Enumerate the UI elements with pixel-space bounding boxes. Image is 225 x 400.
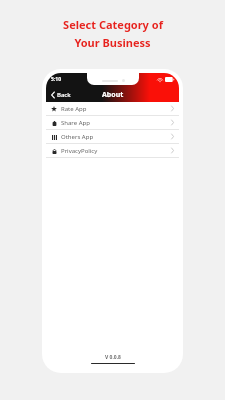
- staticText: 5:10: [51, 76, 61, 83]
- staticText: About: [102, 90, 124, 100]
- button[interactable]: Share App: [46, 116, 179, 130]
- staticText: Share App: [61, 119, 90, 127]
- button[interactable]: PrivacyPolicy: [46, 144, 179, 158]
- staticText: Others App: [61, 133, 94, 141]
- staticText: Rate App: [61, 105, 87, 113]
- staticText: Your Business: [74, 35, 151, 50]
- button[interactable]: Back: [49, 89, 73, 101]
- staticText: Select Category of: [63, 17, 163, 32]
- button[interactable]: Others App: [46, 130, 179, 144]
- staticText: Back: [57, 91, 71, 99]
- staticText: PrivacyPolicy: [61, 147, 98, 155]
- button[interactable]: Rate App: [46, 102, 179, 116]
- staticText: V 0.0.8: [105, 354, 121, 361]
